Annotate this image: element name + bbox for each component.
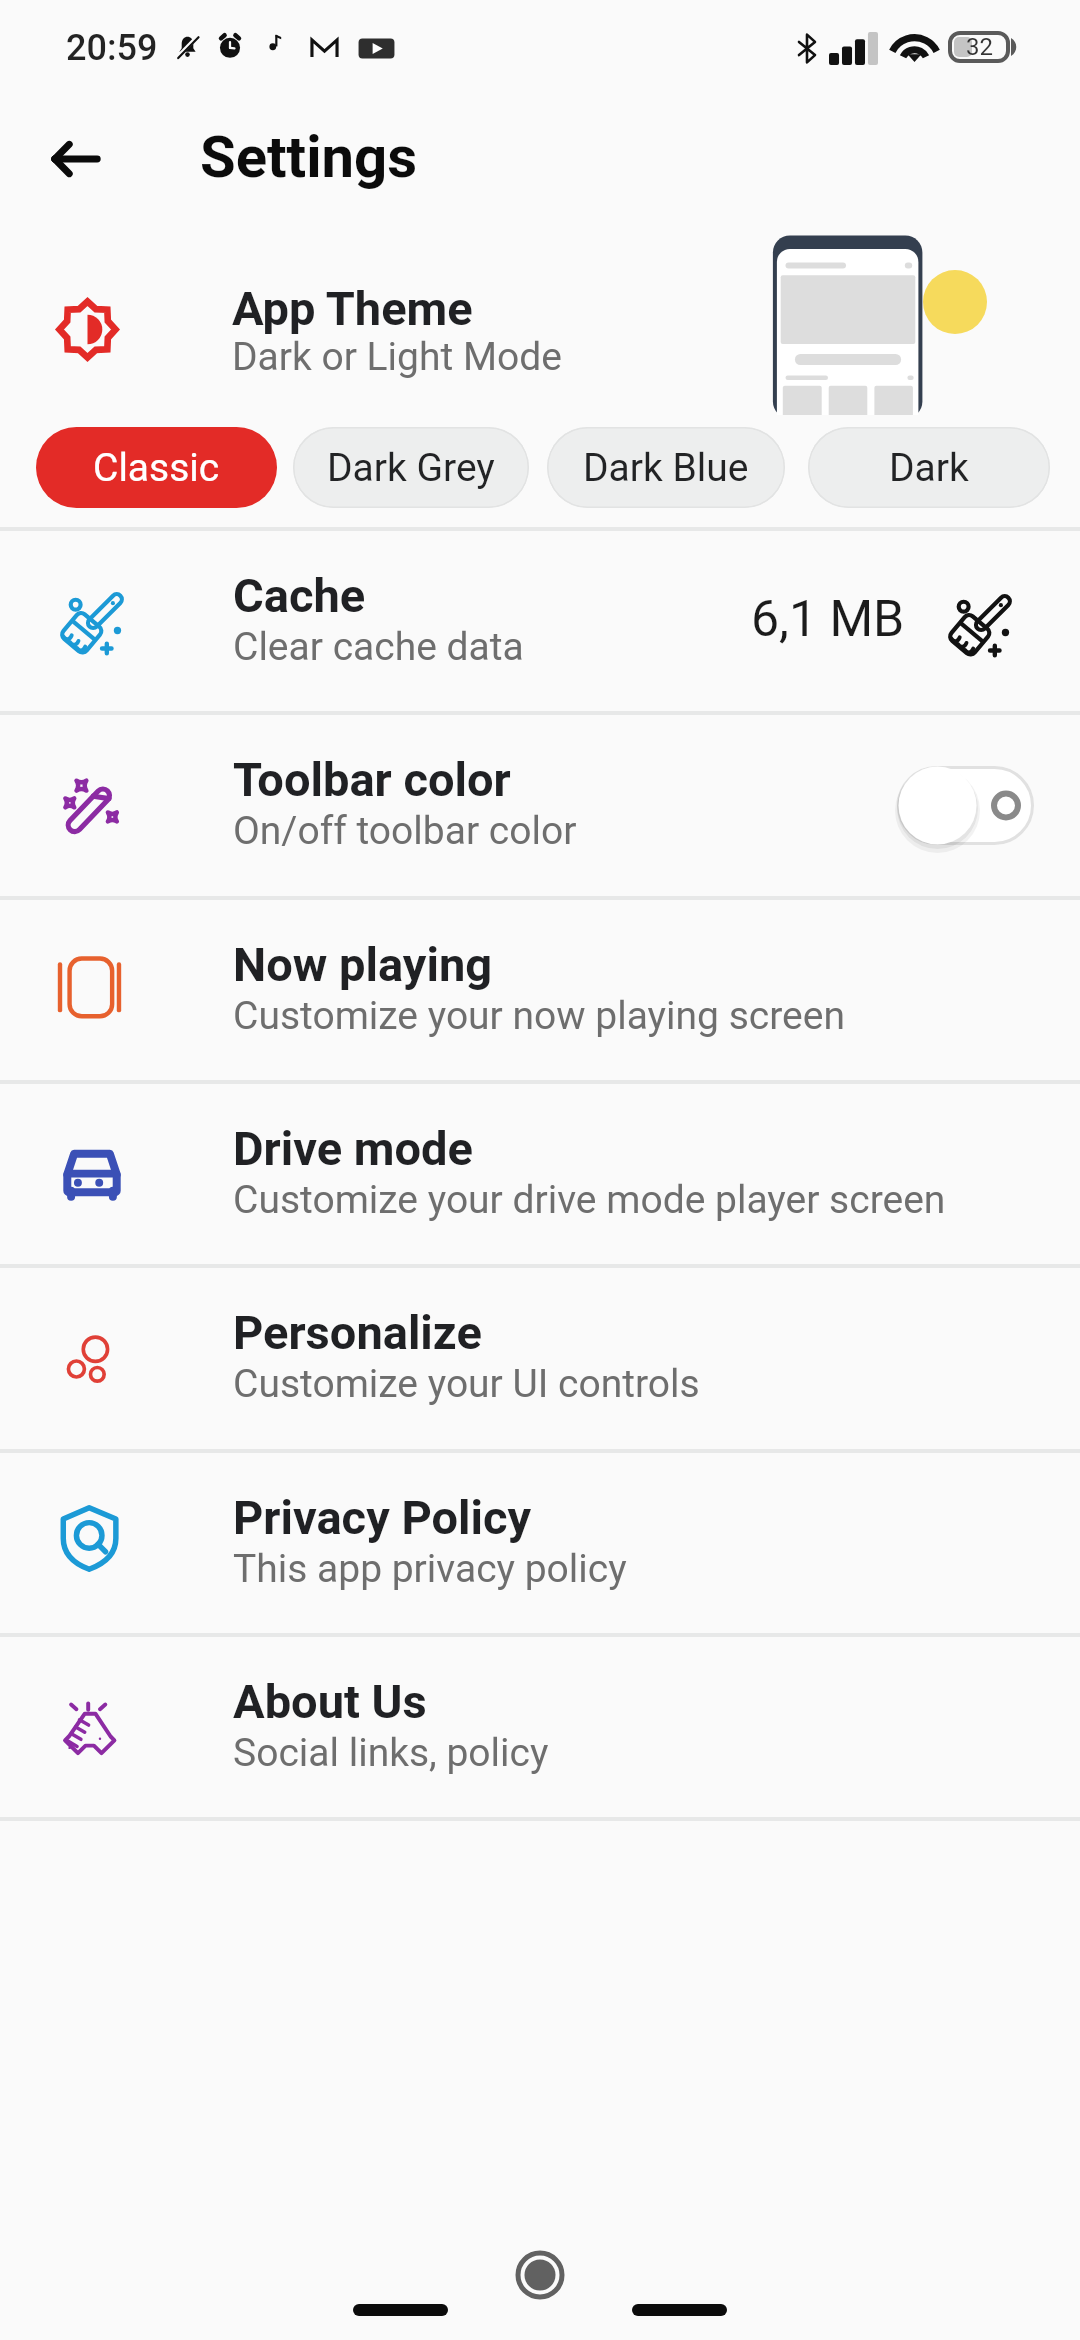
staticText: 20:59: [66, 27, 158, 69]
staticText: Customize your drive mode player screen: [233, 1177, 946, 1223]
button[interactable]: Cache: [0, 531, 1080, 711]
button[interactable]: Privacy Policy: [0, 1453, 1080, 1633]
staticText: Settings: [200, 123, 418, 191]
staticText: Classic: [93, 445, 220, 491]
staticText: This app privacy policy: [233, 1546, 627, 1592]
button[interactable]: Personalize: [0, 1268, 1080, 1448]
staticText: Customize your now playing screen: [233, 993, 845, 1039]
button[interactable]: Dark Blue: [547, 427, 785, 508]
button[interactable]: Classic: [36, 427, 277, 508]
button[interactable]: Now playing: [0, 900, 1080, 1080]
staticText: Dark Grey: [327, 445, 495, 491]
staticText: Privacy Policy: [233, 1490, 532, 1545]
button[interactable]: Toolbar color toggle: [897, 766, 1034, 845]
button[interactable]: Dark Grey: [293, 427, 529, 508]
staticText: Toolbar color: [233, 752, 511, 807]
staticText: Social links, policy: [233, 1730, 549, 1776]
staticText: Dark: [889, 445, 969, 491]
staticText: Customize your UI controls: [233, 1361, 700, 1407]
staticText: On/off toolbar color: [233, 808, 577, 854]
staticText: Dark or Light Mode: [232, 334, 562, 380]
staticText: 6,1 MB: [751, 590, 905, 649]
button[interactable]: About Us: [0, 1637, 1080, 1817]
staticText: Drive mode: [233, 1121, 473, 1176]
staticText: About Us: [233, 1674, 427, 1729]
button[interactable]: Back: [33, 114, 121, 202]
staticText: Now playing: [233, 937, 493, 992]
button[interactable]: Dark: [808, 427, 1050, 508]
button[interactable]: Toolbar color: [0, 715, 1080, 895]
staticText: Dark Blue: [583, 445, 749, 491]
staticText: Cache: [233, 568, 366, 623]
button[interactable]: Drive mode: [0, 1084, 1080, 1264]
staticText: App Theme: [232, 281, 473, 336]
staticText: Personalize: [233, 1305, 482, 1360]
staticText: Clear cache data: [233, 624, 524, 670]
staticText: 32: [966, 33, 993, 61]
